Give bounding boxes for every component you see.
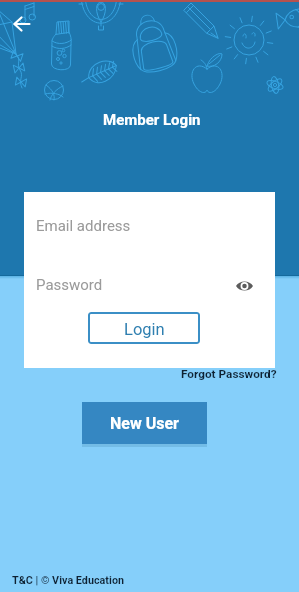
staticText: Password [36,276,103,294]
staticText: Member Login [103,111,201,129]
staticText: Email address [36,217,131,235]
button[interactable]: Forgot Password? [181,367,277,381]
button[interactable]: Back [8,10,35,37]
staticText: New User [110,414,179,433]
button[interactable]: T&C | © Viva Education [12,574,125,587]
button[interactable]: Show password [233,274,255,296]
staticText: Login [124,320,165,339]
button[interactable]: New User [82,402,207,444]
staticText: T&C | © Viva Education [12,574,125,587]
button[interactable]: Login [88,312,200,344]
